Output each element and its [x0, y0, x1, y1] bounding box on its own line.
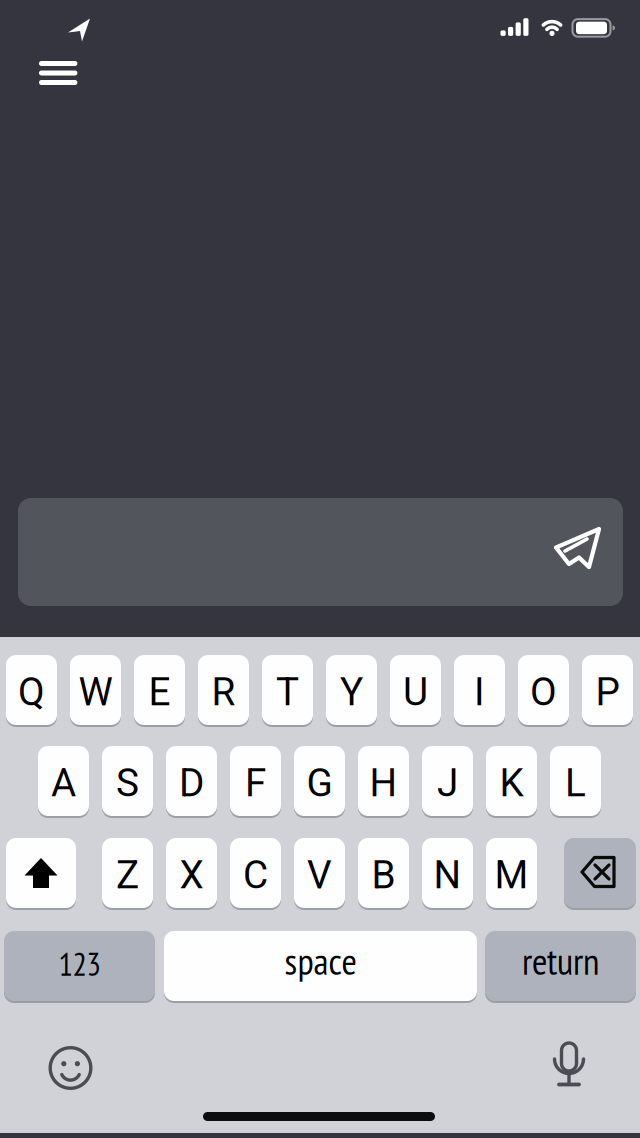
button[interactable]: Z [102, 837, 153, 909]
button[interactable]: U [390, 654, 441, 726]
staticText: return [522, 937, 599, 985]
button[interactable]: P [582, 654, 633, 726]
staticText: Z [116, 852, 139, 898]
button[interactable]: J [422, 745, 473, 817]
staticText: X [179, 852, 203, 898]
button[interactable]: A [38, 745, 89, 817]
button[interactable]: Emoji [46, 1044, 94, 1092]
button[interactable]: 123 [4, 930, 155, 1002]
staticText: F [245, 760, 266, 806]
button[interactable]: return [485, 930, 636, 1002]
staticText: O [530, 669, 557, 715]
staticText: N [433, 852, 461, 898]
staticText: P [595, 669, 619, 715]
button[interactable]: Q [6, 654, 57, 726]
button[interactable]: K [486, 745, 537, 817]
staticText: C [243, 852, 268, 898]
staticText: 123 [58, 943, 100, 985]
staticText: B [371, 852, 395, 898]
staticText: I [474, 669, 485, 715]
button[interactable]: H [358, 745, 409, 817]
staticText: space [284, 937, 356, 985]
staticText: U [403, 669, 428, 715]
staticText: V [307, 852, 332, 898]
button[interactable]: B [358, 837, 409, 909]
button[interactable]: Send [550, 522, 606, 574]
button[interactable]: O [518, 654, 569, 726]
staticText: Q [18, 669, 45, 715]
button[interactable]: V [294, 837, 345, 909]
button[interactable]: Shift [6, 837, 76, 909]
button[interactable]: S [102, 745, 153, 817]
button[interactable]: G [294, 745, 345, 817]
staticText: M [494, 852, 528, 898]
button[interactable]: F [230, 745, 281, 817]
button[interactable]: E [134, 654, 185, 726]
button[interactable]: W [70, 654, 121, 726]
button[interactable]: N [422, 837, 473, 909]
button[interactable]: X [166, 837, 217, 909]
staticText: E [148, 669, 170, 715]
staticText: J [437, 760, 458, 806]
staticText: W [78, 669, 112, 715]
staticText: T [276, 669, 299, 715]
staticText: D [179, 760, 204, 806]
button[interactable]: Dictate [545, 1042, 593, 1094]
button[interactable]: space [164, 930, 477, 1002]
staticText: A [51, 760, 76, 806]
staticText: S [116, 760, 139, 806]
staticText: R [211, 669, 235, 715]
button[interactable]: I [454, 654, 505, 726]
staticText: G [306, 760, 332, 806]
button[interactable]: Delete [564, 837, 636, 909]
staticText: K [499, 760, 523, 806]
button[interactable]: M [486, 837, 537, 909]
button[interactable]: T [262, 654, 313, 726]
button[interactable]: D [166, 745, 217, 817]
button[interactable]: Y [326, 654, 377, 726]
button[interactable]: Message [18, 498, 623, 606]
button[interactable]: Menu [38, 60, 78, 86]
button[interactable]: R [198, 654, 249, 726]
button[interactable]: L [550, 745, 601, 817]
staticText: Y [340, 669, 363, 715]
staticText: L [565, 760, 586, 806]
button[interactable]: C [230, 837, 281, 909]
staticText: H [369, 760, 397, 806]
